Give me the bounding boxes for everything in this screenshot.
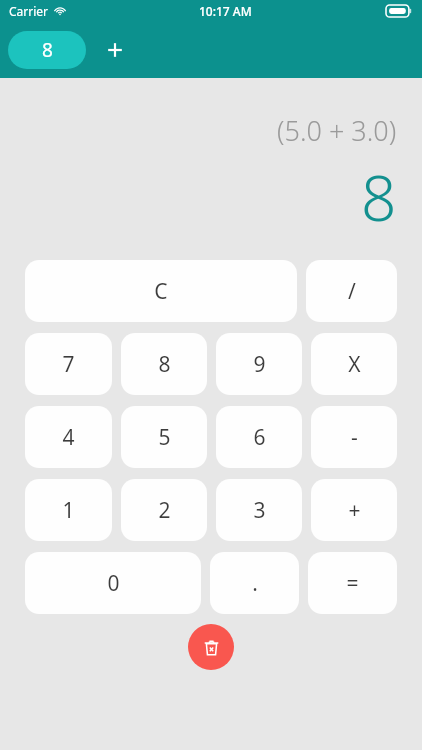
- staticText: 8: [42, 37, 53, 63]
- button[interactable]: /: [306, 260, 397, 322]
- button[interactable]: -: [311, 406, 397, 468]
- staticText: C: [154, 277, 168, 306]
- button[interactable]: 5: [121, 406, 207, 468]
- button[interactable]: 1: [25, 479, 112, 541]
- staticText: -: [351, 423, 358, 452]
- button[interactable]: 0: [25, 552, 201, 614]
- button[interactable]: 8: [121, 333, 207, 395]
- staticText: /: [348, 277, 356, 306]
- staticText: 4: [62, 423, 75, 452]
- staticText: 3: [253, 496, 266, 525]
- button[interactable]: Add tab: [86, 31, 144, 69]
- button[interactable]: =: [308, 552, 397, 614]
- button[interactable]: Delete: [188, 624, 234, 670]
- button[interactable]: 9: [216, 333, 302, 395]
- staticText: 6: [253, 423, 266, 452]
- staticText: X: [348, 350, 361, 379]
- button[interactable]: 8: [8, 31, 86, 69]
- staticText: 8: [158, 350, 171, 379]
- button[interactable]: X: [311, 333, 397, 395]
- button[interactable]: .: [210, 552, 299, 614]
- staticText: .: [252, 569, 258, 598]
- staticText: 7: [62, 350, 75, 379]
- staticText: 5: [158, 423, 171, 452]
- staticText: (5.0 + 3.0): [277, 112, 397, 149]
- staticText: 2: [158, 496, 171, 525]
- button[interactable]: +: [311, 479, 397, 541]
- staticText: 10:17 AM: [199, 3, 252, 19]
- staticText: +: [348, 496, 361, 525]
- button[interactable]: 7: [25, 333, 112, 395]
- staticText: Carrier: [9, 3, 49, 19]
- staticText: 8: [361, 155, 397, 239]
- staticText: 1: [62, 496, 75, 525]
- staticText: 9: [253, 350, 266, 379]
- button[interactable]: C: [25, 260, 297, 322]
- button[interactable]: 2: [121, 479, 207, 541]
- button[interactable]: 3: [216, 479, 302, 541]
- staticText: =: [346, 569, 359, 598]
- staticText: 0: [107, 569, 120, 598]
- button[interactable]: 4: [25, 406, 112, 468]
- button[interactable]: 6: [216, 406, 302, 468]
